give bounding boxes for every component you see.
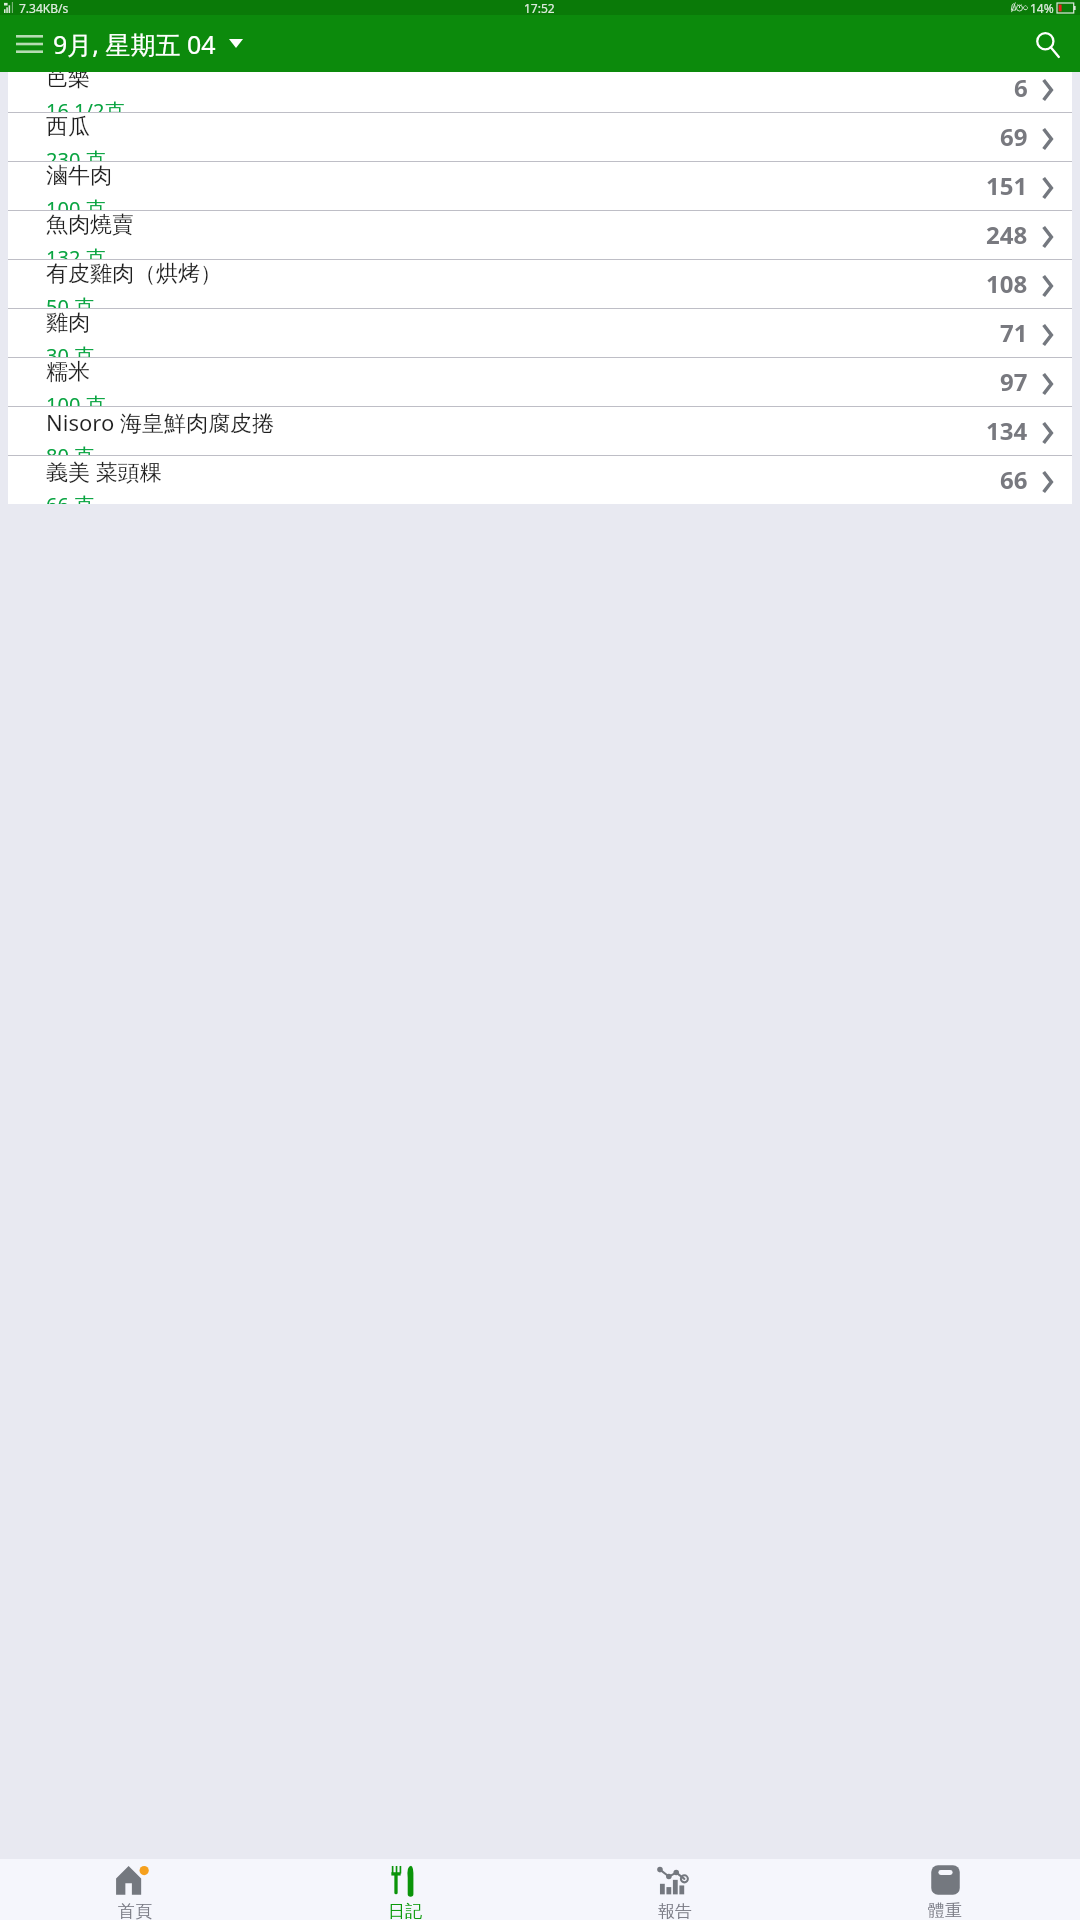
button[interactable]: 9月, 星期五 04 (53, 15, 243, 72)
button[interactable]: 日記 (270, 1859, 540, 1920)
button[interactable]: 西瓜 (8, 113, 1072, 162)
staticText: 132 克 (46, 244, 106, 259)
staticText: 69 (1000, 120, 1028, 153)
staticText: 魚肉燒賣 (46, 211, 134, 239)
staticText: 151 (986, 169, 1028, 202)
staticText: 14% (1030, 0, 1054, 15)
staticText: 日記 (388, 1901, 422, 1920)
button[interactable]: 滷牛肉 (8, 162, 1072, 211)
staticText: 雞肉 (46, 309, 90, 337)
staticText: 100 克 (46, 195, 106, 210)
staticText: 16 1/2克 (46, 97, 125, 112)
staticText: 芭樂 (46, 72, 90, 92)
staticText: Nisoro 海皇鮮肉腐皮捲 (46, 407, 274, 437)
button[interactable]: 有皮雞肉（烘烤） (8, 260, 1072, 309)
staticText: 230 克 (46, 146, 106, 161)
button[interactable]: Menu (5, 20, 53, 68)
staticText: 66 (1000, 463, 1028, 496)
staticText: 80 克 (46, 442, 95, 455)
button[interactable]: Nisoro 海皇鮮肉腐皮捲 (8, 407, 1072, 456)
button[interactable]: 首頁 (0, 1859, 270, 1920)
staticText: 108 (986, 267, 1028, 300)
button[interactable]: Search (1023, 20, 1071, 68)
button[interactable]: 義美 菜頭粿 (8, 456, 1072, 504)
staticText: 義美 菜頭粿 (46, 456, 162, 486)
staticText: 糯米 (46, 358, 90, 386)
button[interactable]: 糯米 (8, 358, 1072, 407)
staticText: 報告 (658, 1901, 692, 1920)
staticText: 134 (986, 414, 1028, 447)
staticText: 7.34KB/s (19, 0, 69, 15)
staticText: 17:52 (524, 0, 555, 15)
staticText: 體重 (928, 1900, 962, 1920)
staticText: 66 克 (46, 491, 95, 504)
staticText: 有皮雞肉（烘烤） (46, 260, 222, 288)
button[interactable]: 魚肉燒賣 (8, 211, 1072, 260)
staticText: 首頁 (118, 1901, 152, 1920)
staticText: 滷牛肉 (46, 162, 112, 190)
button[interactable]: 芭樂 (8, 72, 1072, 113)
staticText: 50 克 (46, 293, 95, 308)
staticText: 30 克 (46, 342, 95, 357)
staticText: 西瓜 (46, 113, 90, 141)
staticText: 6 (1014, 72, 1028, 104)
button[interactable]: 雞肉 (8, 309, 1072, 358)
staticText: 97 (1000, 365, 1028, 398)
staticText: 9月, 星期五 04 (53, 27, 216, 61)
button[interactable]: 體重 (810, 1859, 1080, 1920)
staticText: 71 (1000, 316, 1028, 349)
staticText: 248 (986, 218, 1028, 251)
staticText: 100 克 (46, 391, 106, 406)
button[interactable]: 報告 (540, 1859, 810, 1920)
